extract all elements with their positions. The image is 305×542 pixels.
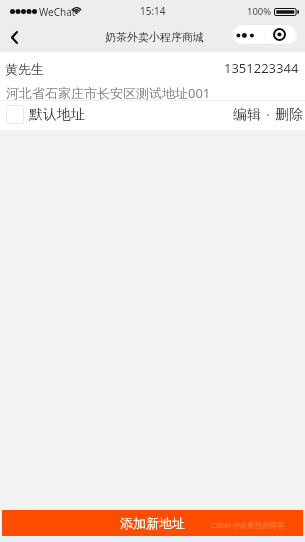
- button[interactable]: 删除: [275, 106, 303, 124]
- button[interactable]: More: [232, 24, 264, 45]
- button[interactable]: 默认地址: [6, 105, 85, 124]
- button[interactable]: 添加新地址: [2, 510, 303, 536]
- staticText: 河北省石家庄市长安区测试地址001: [6, 84, 211, 102]
- staticText: 1351223344: [224, 59, 299, 77]
- staticText: 100%: [247, 5, 272, 18]
- staticText: 黄先生: [5, 61, 44, 77]
- button[interactable]: Close mini program: [265, 24, 297, 45]
- staticText: WeChat: [39, 5, 76, 19]
- button[interactable]: 编辑: [233, 106, 261, 124]
- staticText: 15:14: [140, 4, 166, 18]
- button[interactable]: 黄先生: [0, 52, 305, 130]
- staticText: 奶茶外卖小程序商城: [105, 30, 204, 44]
- staticText: 添加新地址: [120, 515, 185, 531]
- staticText: 默认地址: [29, 106, 85, 124]
- staticText: CSDN @余勇胜的博客: [211, 520, 285, 530]
- button[interactable]: Back: [0, 23, 29, 52]
- staticText: ·: [266, 105, 270, 124]
